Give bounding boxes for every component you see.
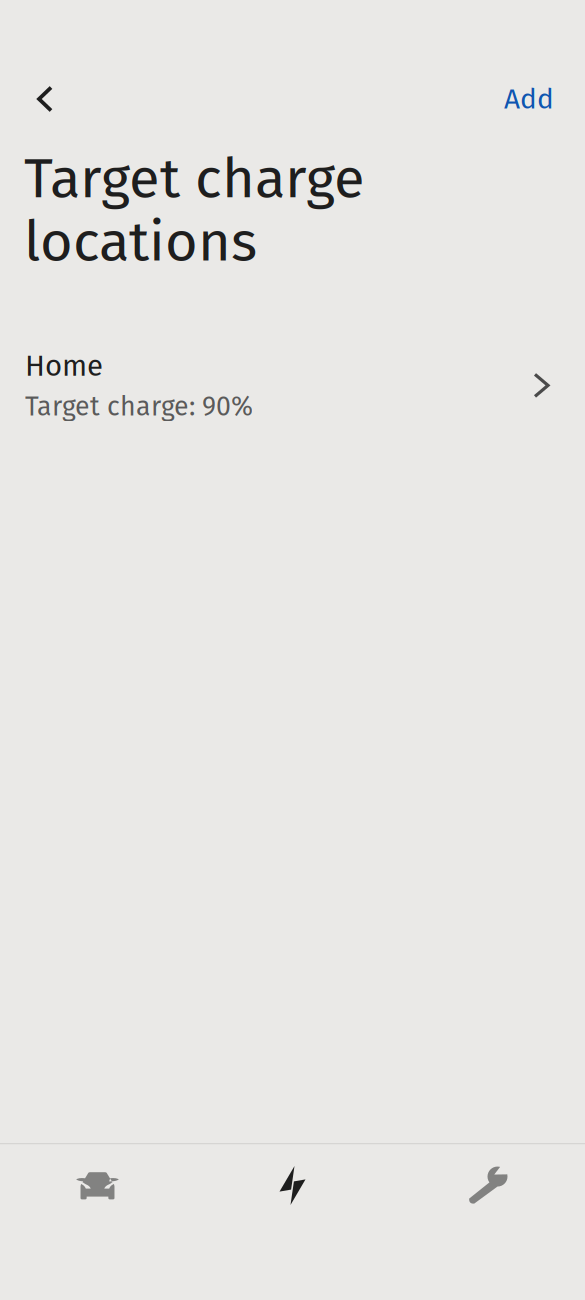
button[interactable]: Car [0,1144,195,1300]
staticText: Home [25,348,103,383]
button[interactable]: Add [496,73,562,125]
staticText: Target charge: 90% [25,390,253,422]
staticText: Target charge [24,145,365,212]
button[interactable]: Service [390,1144,585,1300]
staticText: Add [504,82,554,116]
button[interactable]: Charging [195,1144,390,1300]
staticText: locations [24,208,257,275]
button[interactable]: Back [19,73,71,125]
button[interactable]: Home [0,347,585,423]
